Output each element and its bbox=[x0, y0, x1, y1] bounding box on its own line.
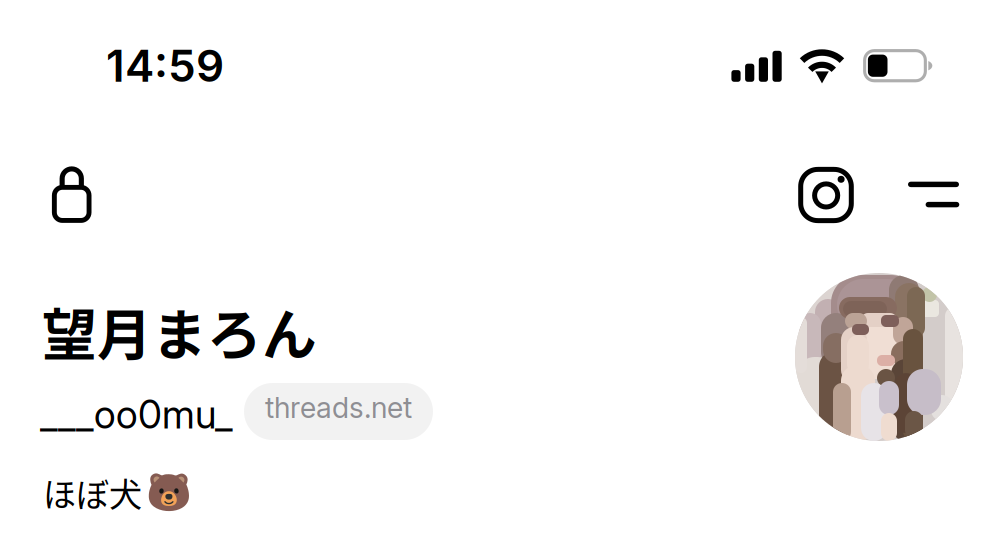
staticText: 望月まろん bbox=[42, 291, 317, 370]
button[interactable]: Profile photo bbox=[795, 273, 963, 441]
button[interactable]: Instagram bbox=[798, 167, 854, 223]
button[interactable]: threads.net bbox=[244, 383, 433, 440]
staticText: 🐻 bbox=[145, 471, 191, 514]
staticText: threads.net bbox=[265, 390, 412, 425]
button[interactable]: Private account bbox=[51, 166, 92, 223]
button[interactable]: More bbox=[908, 182, 959, 207]
staticText: 14:59 bbox=[106, 39, 224, 92]
staticText: ほぼ犬 bbox=[43, 468, 142, 516]
staticText: ___oo0mu_ bbox=[40, 391, 233, 438]
